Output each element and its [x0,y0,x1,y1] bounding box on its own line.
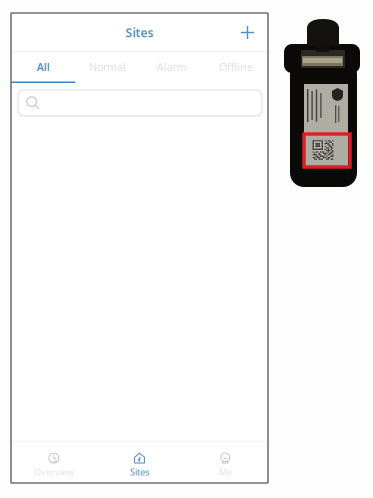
button[interactable]: Overview [11,442,97,483]
staticText: Offline [219,60,253,74]
staticText: Overview [34,466,74,478]
button[interactable]: Normal [75,52,139,83]
button[interactable]: All [11,52,75,83]
button[interactable]: Offline [204,52,268,83]
staticText: Me [219,466,232,478]
staticText: Normal [89,60,126,74]
button[interactable]: Alarm [139,52,204,83]
button[interactable]: Sites [97,442,182,483]
button[interactable]: Add site [233,21,268,44]
staticText: Alarm [157,60,187,74]
staticText: Sites [125,24,153,40]
staticText: All [37,60,50,74]
staticText: Sites [130,466,149,478]
button[interactable]: Me [182,442,268,483]
